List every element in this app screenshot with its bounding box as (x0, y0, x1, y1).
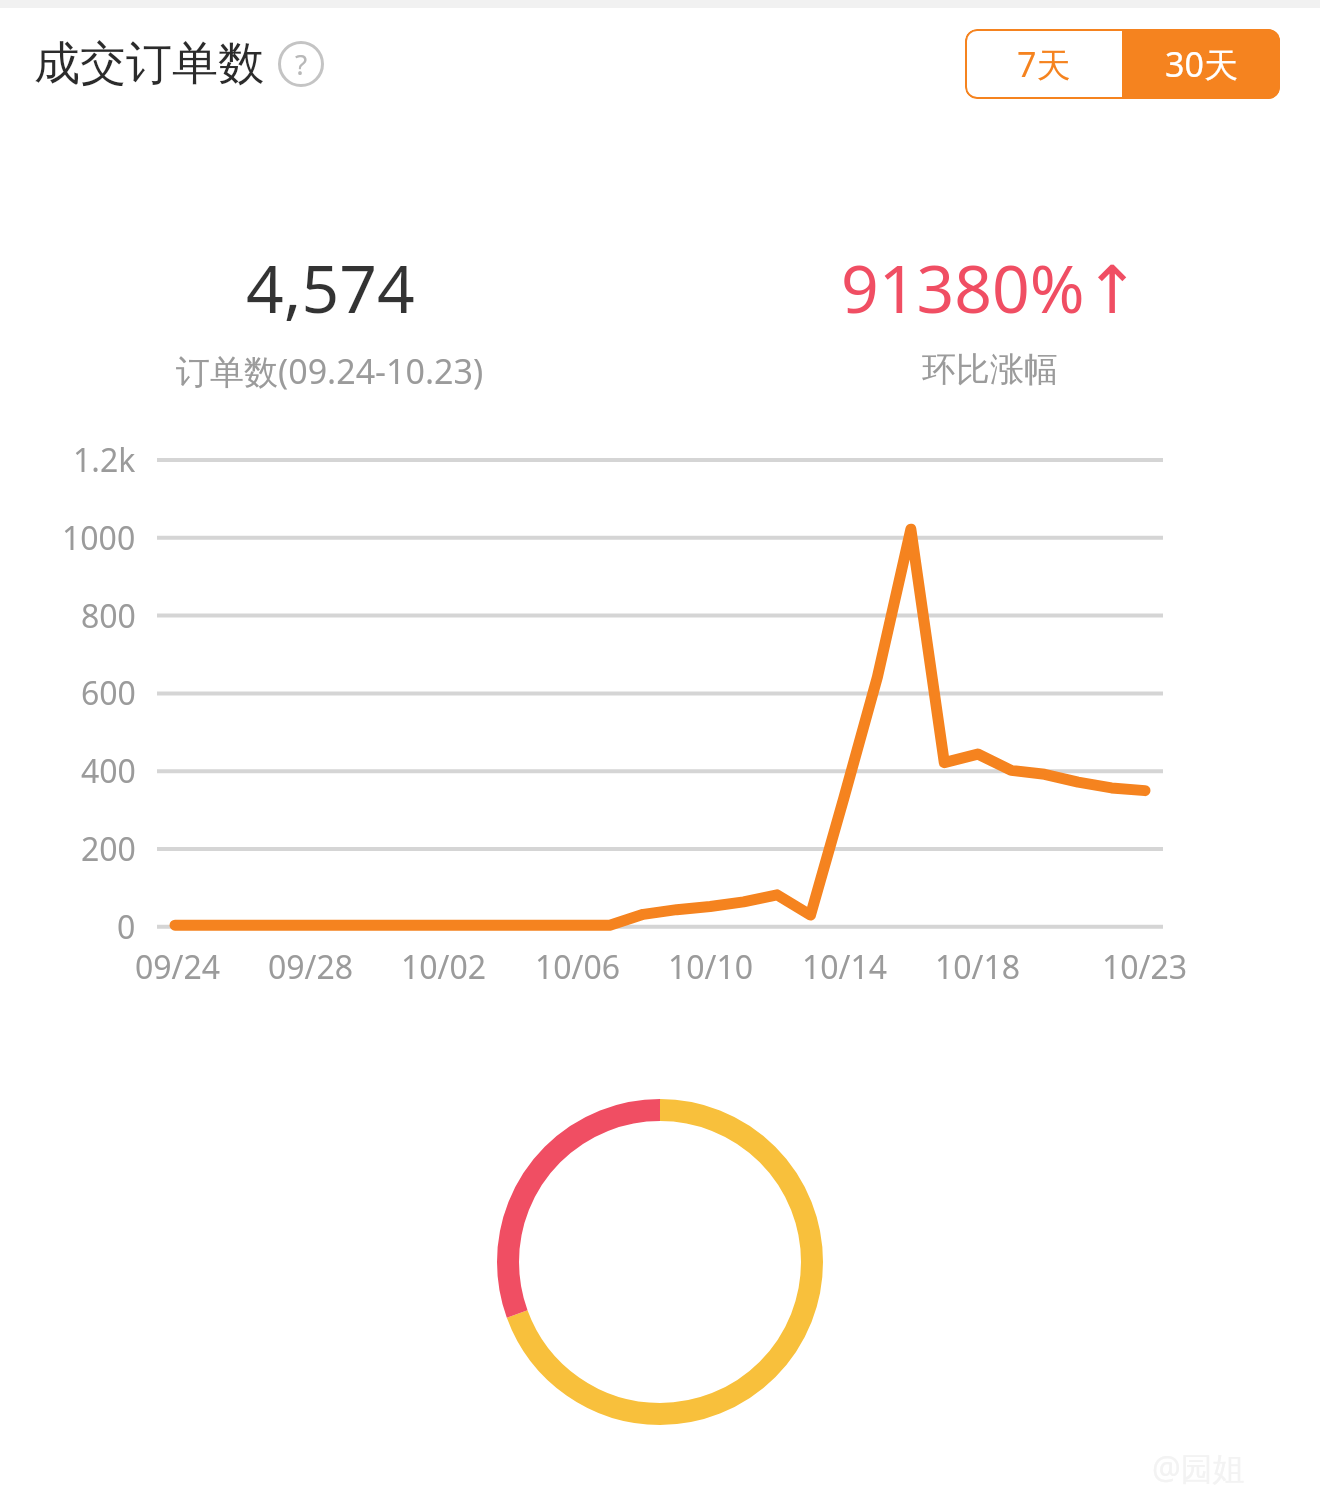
staticText: 800 (81, 594, 136, 638)
staticText: 10/23 (1102, 945, 1188, 989)
staticText: 订单数(09.24-10.23) (176, 348, 484, 394)
staticText: 1.2k (73, 438, 136, 482)
staticText: 30天 (1165, 41, 1238, 87)
staticText: 09/24 (135, 945, 221, 989)
staticText: 0 (117, 905, 136, 949)
staticText: ? (295, 45, 308, 83)
staticText: 7天 (1017, 41, 1071, 87)
staticText: 10/10 (668, 945, 754, 989)
button[interactable]: 成交订单数 (34, 35, 324, 93)
staticText: 4,574 (246, 242, 415, 332)
staticText: 环比涨幅 (922, 348, 1058, 391)
staticText: 10/06 (535, 945, 621, 989)
staticText: 91380%↑ (841, 242, 1140, 332)
staticText: 成交订单数 (34, 35, 264, 93)
staticText: 10/02 (401, 945, 487, 989)
staticText: 200 (81, 827, 136, 871)
staticText: 600 (81, 671, 136, 715)
staticText: 10/14 (802, 945, 888, 989)
staticText: @园姐 (1152, 1446, 1245, 1490)
staticText: 09/28 (268, 945, 354, 989)
button[interactable]: 30天 (1122, 29, 1280, 99)
staticText: 10/18 (935, 945, 1021, 989)
other: Help (278, 41, 324, 87)
staticText: 400 (81, 749, 136, 793)
button[interactable]: 7天 (965, 29, 1122, 99)
staticText: 1000 (62, 516, 136, 560)
